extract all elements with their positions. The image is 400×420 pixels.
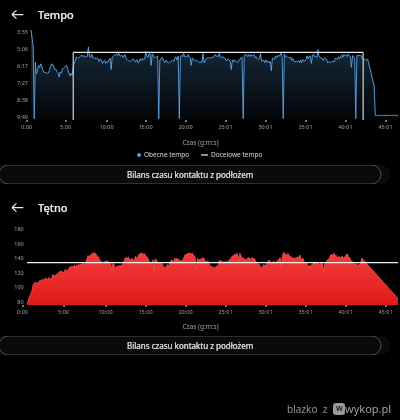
staticText: 5:06 [17, 45, 28, 52]
staticText: Bilans czasu kontaktu z podłożem [127, 169, 254, 180]
staticText: 3:55 [17, 28, 28, 35]
staticText: 9:49 [17, 113, 28, 120]
staticText: 80 [17, 298, 24, 305]
staticText: 100 [14, 283, 24, 290]
staticText: wykop.pl [345, 401, 392, 416]
staticText: 5:00 [58, 308, 69, 315]
staticText: 140 [14, 254, 24, 261]
staticText: 5:00 [60, 123, 71, 130]
staticText: 8:38 [17, 96, 28, 103]
staticText: 160 [14, 240, 24, 247]
staticText: 0:00 [21, 123, 32, 130]
staticText: 35:01 [298, 123, 313, 130]
staticText: 45:01 [378, 123, 393, 130]
staticText: 10:00 [99, 123, 114, 130]
button[interactable]: Bilans czasu kontaktu z podłożem [0, 336, 390, 355]
staticText: 20:00 [178, 308, 193, 315]
staticText: 180 [14, 225, 24, 232]
staticText: 45:01 [378, 308, 393, 315]
staticText: Czas (g:m:s) [182, 322, 219, 331]
staticText: Czas (g:m:s) [182, 138, 219, 147]
staticText: Bilans czasu kontaktu z podłożem [127, 340, 254, 351]
staticText: blazko z [287, 402, 333, 416]
staticText: 120 [14, 269, 24, 276]
staticText: 25:01 [218, 308, 233, 315]
staticText: 15:00 [138, 308, 153, 315]
button[interactable]: Back [6, 196, 28, 218]
staticText: 40:01 [338, 308, 353, 315]
staticText: 0:00 [17, 308, 28, 315]
staticText: 7:27 [17, 79, 28, 86]
staticText: 6:17 [17, 62, 28, 69]
staticText: W [336, 404, 343, 414]
staticText: 40:01 [338, 123, 353, 130]
button[interactable]: Bilans czasu kontaktu z podłożem [0, 165, 390, 184]
staticText: 30:01 [258, 123, 273, 130]
staticText: 10:00 [98, 308, 113, 315]
staticText: 20:00 [178, 123, 193, 130]
staticText: 25:01 [218, 123, 233, 130]
staticText: 15:00 [138, 123, 153, 130]
staticText: 30:01 [258, 308, 273, 315]
staticText: Obecne tempo [144, 150, 190, 159]
staticText: Docelowe tempo [211, 150, 263, 159]
button[interactable]: Back [6, 3, 28, 25]
staticText: Tętno [38, 200, 68, 215]
staticText: Tempo [38, 7, 74, 22]
staticText: 35:01 [298, 308, 313, 315]
